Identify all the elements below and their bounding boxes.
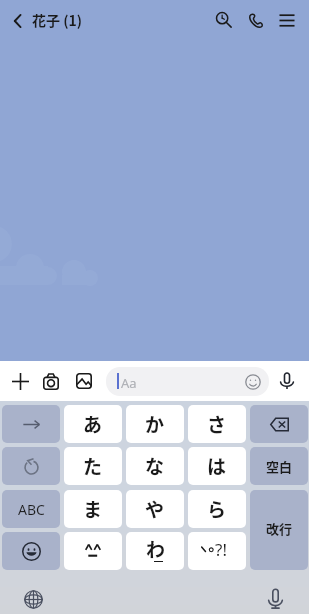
button[interactable]: Change keyboard [20, 586, 46, 612]
button[interactable]: Backspace [250, 405, 308, 443]
button[interactable]: Search [209, 5, 237, 33]
staticText: 改行 [266, 519, 293, 538]
staticText: は [207, 452, 227, 480]
button[interactable]: さ [188, 405, 246, 443]
button[interactable]: Camera [37, 367, 65, 395]
button[interactable]: Voice message [273, 367, 300, 394]
staticText: 空白 [266, 457, 293, 476]
button[interactable]: Add [6, 367, 34, 395]
button[interactable]: ?! [188, 532, 246, 570]
button[interactable]: Call [242, 7, 270, 35]
button[interactable]: や [126, 490, 184, 528]
staticText: あ [83, 410, 103, 438]
button[interactable]: Menu [273, 6, 301, 34]
button[interactable]: Undo [2, 447, 60, 485]
staticText: た [83, 452, 103, 480]
staticText: Aa [121, 374, 137, 392]
button[interactable]: は [188, 447, 246, 485]
staticText: わ [146, 535, 166, 559]
staticText: ?! [215, 538, 227, 558]
button[interactable]: か [126, 405, 184, 443]
staticText: な [145, 452, 165, 480]
button[interactable]: ら [188, 490, 246, 528]
button[interactable]: ま [64, 490, 122, 528]
staticText: や [145, 495, 165, 523]
button[interactable]: な [126, 447, 184, 485]
staticText: 花子 (1) [32, 10, 83, 30]
staticText: ABC [18, 500, 45, 519]
button[interactable]: 改行 [250, 490, 308, 570]
staticText: ら [207, 495, 227, 523]
staticText: ま [83, 495, 103, 523]
button[interactable]: た [64, 447, 122, 485]
button[interactable]: Aa [106, 367, 269, 396]
staticText: か [145, 410, 165, 438]
button[interactable]: あ [64, 405, 122, 443]
button[interactable]: Emoji [2, 532, 60, 570]
button[interactable]: わ [126, 532, 184, 570]
button[interactable]: Gallery [70, 367, 98, 395]
button[interactable]: Next candidate [2, 405, 60, 443]
button[interactable]: Back [4, 7, 31, 34]
button[interactable]: 空白 [250, 447, 308, 485]
button[interactable]: Emoji [241, 370, 264, 393]
button[interactable]: ABC [2, 490, 60, 528]
staticText: さ [207, 410, 227, 438]
button[interactable]: Voice input [262, 585, 288, 611]
button[interactable] [64, 532, 122, 570]
